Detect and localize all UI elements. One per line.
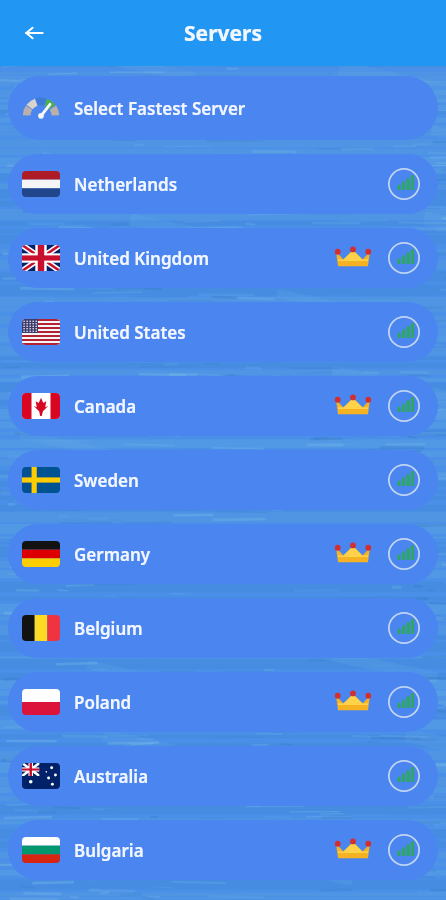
button[interactable]: Belgium (8, 598, 438, 658)
staticText: Select Fastest Server (74, 97, 246, 120)
button[interactable]: Bulgaria (8, 820, 438, 880)
staticText: Servers (184, 19, 262, 48)
button[interactable]: Netherlands (8, 154, 438, 214)
staticText: United Kingdom (74, 247, 336, 270)
button[interactable]: Select Fastest Server (8, 76, 438, 140)
staticText: United States (74, 321, 388, 344)
staticText: Bulgaria (74, 839, 336, 862)
staticText: Canada (74, 395, 336, 418)
button[interactable]: Back (12, 11, 56, 55)
staticText: Poland (74, 691, 336, 714)
staticText: Germany (74, 543, 336, 566)
button[interactable]: Sweden (8, 450, 438, 510)
button[interactable]: Australia (8, 746, 438, 806)
button[interactable]: Canada (8, 376, 438, 436)
button[interactable]: Poland (8, 672, 438, 732)
button[interactable]: Germany (8, 524, 438, 584)
button[interactable]: United Kingdom (8, 228, 438, 288)
button[interactable]: United States (8, 302, 438, 362)
staticText: Belgium (74, 617, 388, 640)
staticText: Sweden (74, 469, 388, 492)
staticText: Australia (74, 765, 388, 788)
staticText: Netherlands (74, 173, 388, 196)
